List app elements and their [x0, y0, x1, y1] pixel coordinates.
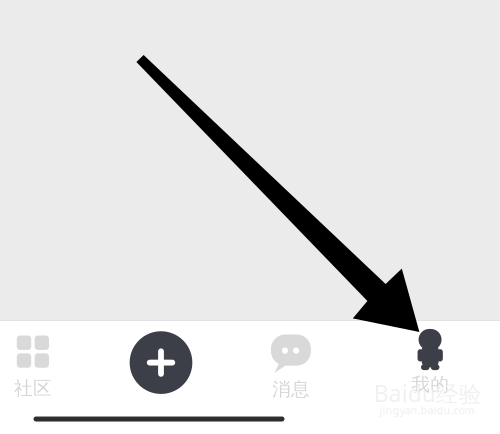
button[interactable]: 社区: [0, 333, 88, 403]
button[interactable]: 我的: [375, 327, 485, 397]
staticText: Baidu经验: [374, 378, 482, 408]
staticText: 我的: [411, 373, 449, 396]
staticText: 消息: [272, 378, 310, 401]
staticText: Baidu经验: [373, 379, 481, 409]
staticText: jingyan.baidu.com: [379, 403, 474, 417]
button[interactable]: 消息: [236, 333, 346, 403]
button[interactable]: 发布: [113, 328, 209, 398]
staticText: 社区: [14, 377, 52, 400]
